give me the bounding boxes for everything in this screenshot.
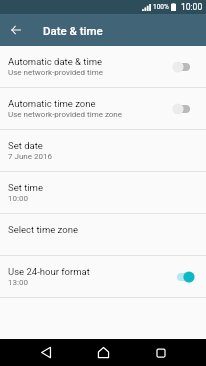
- button[interactable]: Set date: [0, 130, 206, 171]
- staticText: Use 24-hour format: [8, 266, 90, 277]
- button[interactable]: Set time: [0, 172, 206, 213]
- button[interactable]: Navigate up: [0, 14, 32, 46]
- button[interactable]: Use 24-hour format: [0, 256, 206, 297]
- button[interactable]: Recent apps: [147, 339, 174, 366]
- staticText: Select time zone: [8, 224, 78, 235]
- button[interactable]: Select time zone: [0, 214, 206, 255]
- staticText: 100%: [153, 3, 169, 11]
- button[interactable]: On: [169, 267, 195, 287]
- staticText: 13:00: [8, 278, 28, 287]
- button[interactable]: Off: [169, 57, 195, 77]
- button[interactable]: Back: [33, 339, 60, 366]
- staticText: Use network-provided time: [8, 68, 103, 77]
- staticText: 7 June 2016: [8, 152, 52, 161]
- button[interactable]: Home: [90, 339, 117, 366]
- staticText: 10:00: [181, 2, 203, 12]
- staticText: 10:00: [8, 194, 28, 203]
- staticText: Use network-provided time zone: [8, 110, 123, 119]
- staticText: Set date: [8, 140, 43, 151]
- button[interactable]: Automatic time zone: [0, 88, 206, 129]
- staticText: Automatic time zone: [8, 98, 96, 109]
- button[interactable]: Automatic date & time: [0, 46, 206, 87]
- staticText: Date & time: [43, 24, 103, 37]
- button[interactable]: Off: [169, 99, 195, 119]
- staticText: Set time: [8, 182, 43, 193]
- staticText: Automatic date & time: [8, 56, 103, 67]
